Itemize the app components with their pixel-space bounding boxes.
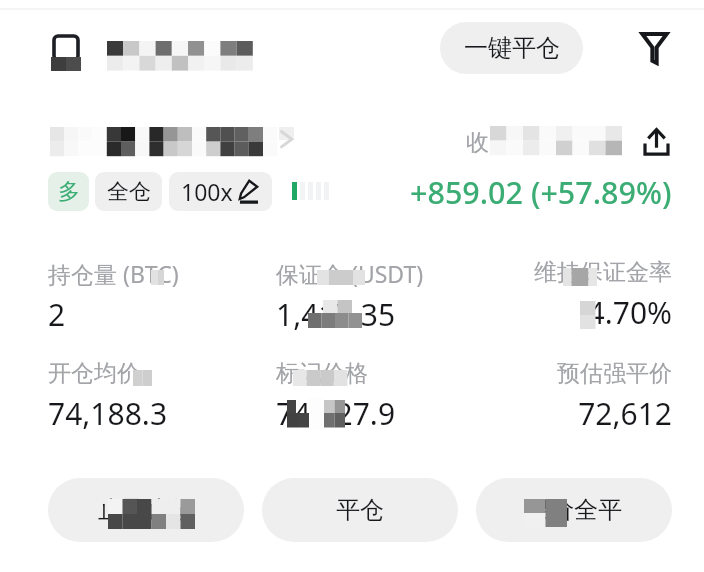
staticText: 止盈止损 bbox=[98, 495, 194, 525]
button[interactable]: 100x bbox=[169, 172, 272, 211]
staticText: 限价全平 bbox=[526, 495, 622, 525]
staticText: 全仓 bbox=[107, 178, 151, 206]
staticText: 多 bbox=[58, 178, 80, 206]
button[interactable]: Select position bbox=[52, 34, 80, 62]
staticText: 100x bbox=[181, 176, 233, 207]
button[interactable]: 多 bbox=[48, 172, 89, 211]
button[interactable]: Filter bbox=[636, 30, 672, 66]
staticText: 74,188.3 bbox=[48, 393, 276, 434]
staticText: 72,612 bbox=[504, 393, 672, 434]
staticText: 预估强平价 bbox=[504, 359, 672, 388]
staticText: 标记价格 bbox=[276, 359, 504, 388]
staticText: 开仓均价 bbox=[48, 359, 276, 388]
staticText: 保证金 (USDT) bbox=[276, 258, 504, 289]
staticText: 维持保证金率 bbox=[504, 258, 672, 287]
staticText: +859.02 (+57.89%) bbox=[410, 171, 672, 211]
staticText: 持仓量 (BTC) bbox=[48, 258, 276, 289]
staticText: 4.70% bbox=[504, 292, 672, 333]
button[interactable]: 止盈止损 bbox=[48, 478, 244, 542]
button[interactable]: 全仓 bbox=[95, 172, 162, 211]
staticText: 一键平仓 bbox=[464, 33, 560, 63]
staticText: 平仓 bbox=[336, 495, 384, 525]
button[interactable]: Share bbox=[640, 125, 673, 158]
staticText: 2 bbox=[48, 294, 276, 335]
staticText: 1,417.35 bbox=[276, 294, 504, 335]
staticText: 74,127.9 bbox=[276, 393, 504, 434]
button[interactable]: 限价全平 bbox=[476, 478, 672, 542]
staticText: 收 bbox=[466, 128, 489, 157]
button[interactable]: 平仓 bbox=[262, 478, 458, 542]
button[interactable]: 一键平仓 bbox=[440, 22, 583, 74]
